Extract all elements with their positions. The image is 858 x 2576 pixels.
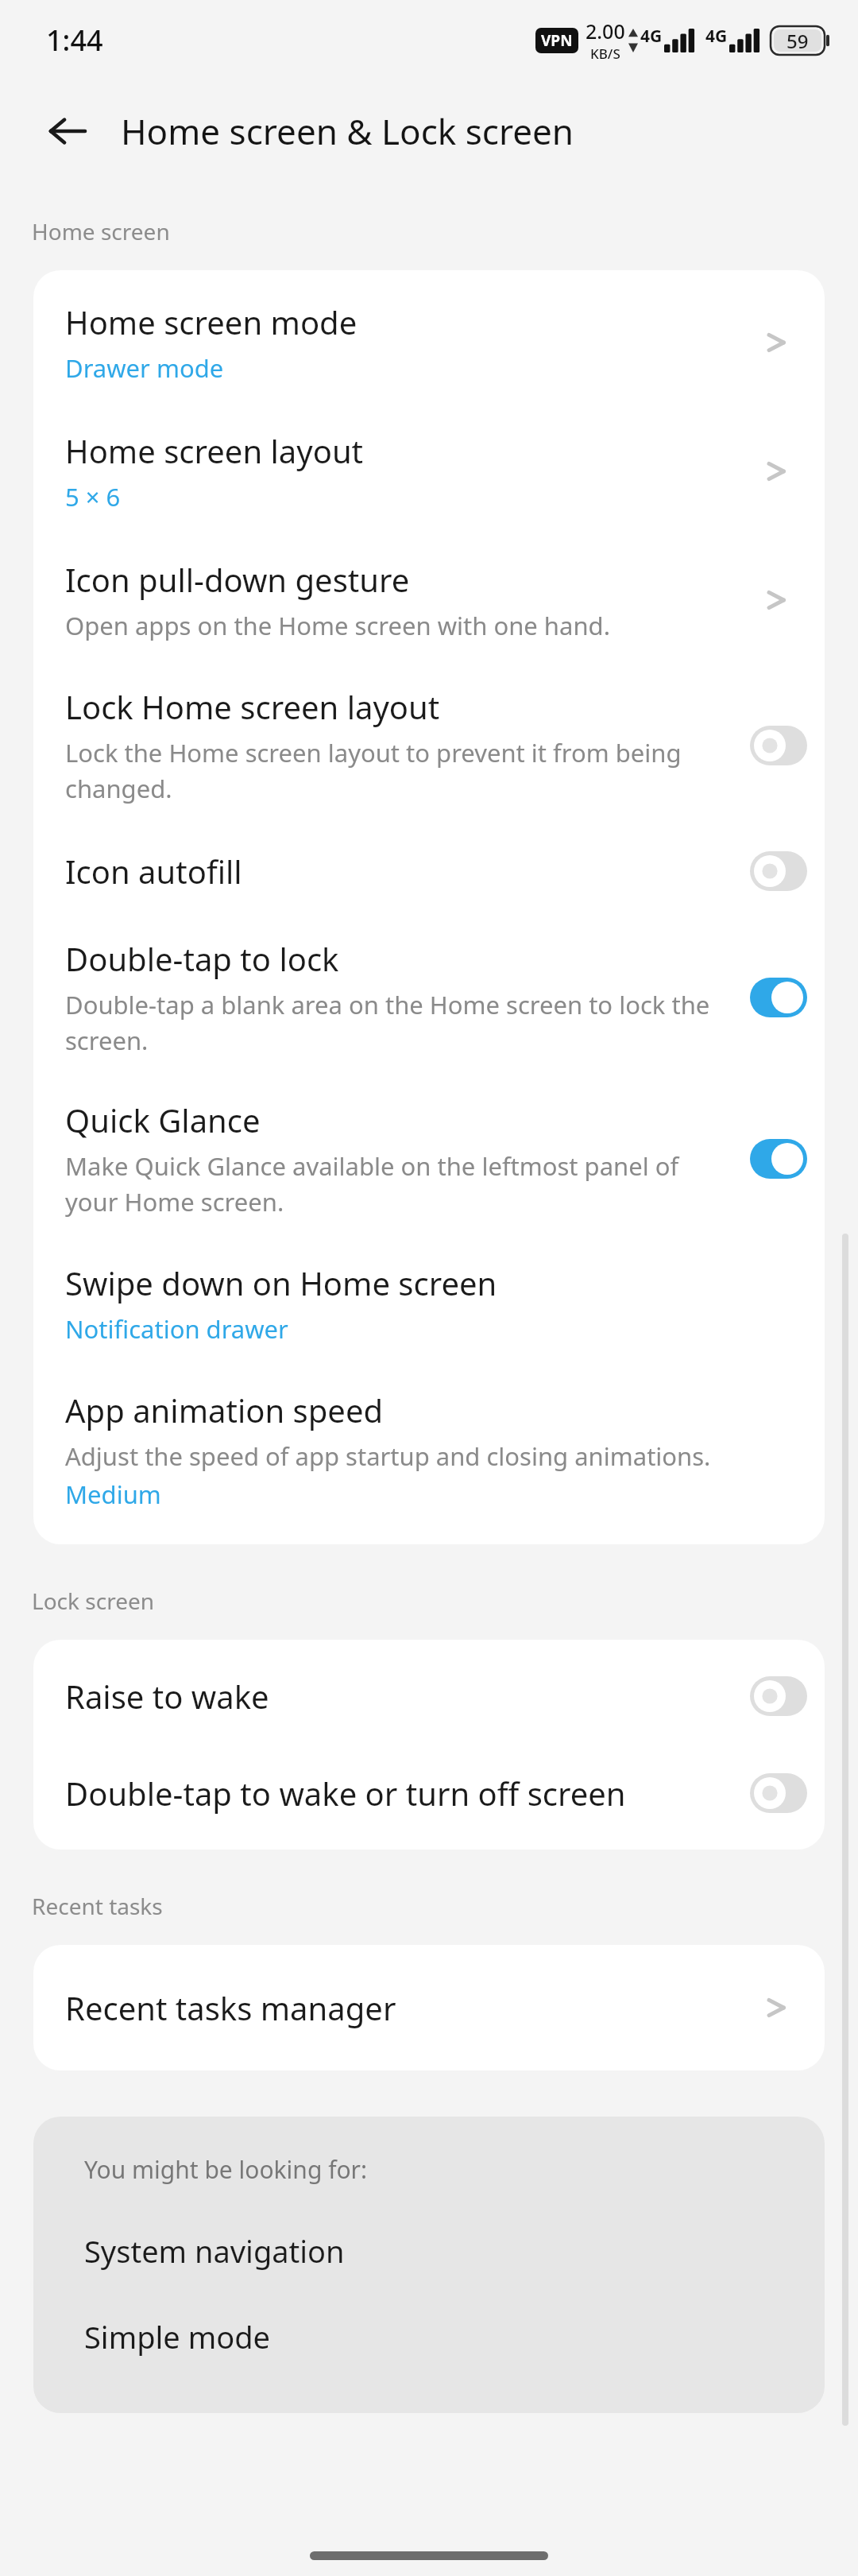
staticText: Home screen layout xyxy=(65,429,364,472)
staticText: Drawer mode xyxy=(65,351,224,385)
staticText: System navigation xyxy=(84,2230,345,2272)
button[interactable]: Lock Home screen layout xyxy=(750,726,807,765)
button[interactable]: Double-tap to wake or turn off screen xyxy=(750,1773,807,1813)
staticText: Medium xyxy=(65,1478,161,1511)
staticText: Icon pull-down gesture xyxy=(65,558,410,601)
staticText: 59 xyxy=(786,28,809,54)
staticText: Raise to wake xyxy=(65,1675,269,1718)
staticText: Recent tasks manager xyxy=(65,1986,396,2029)
button[interactable]: Recent tasks manager xyxy=(33,1945,825,2070)
button[interactable]: Raise to wake xyxy=(33,1648,825,1745)
button[interactable]: Double-tap to lock xyxy=(750,978,807,1017)
button[interactable]: Quick Glance xyxy=(750,1139,807,1179)
staticText: Double-tap a blank area on the Home scre… xyxy=(65,988,735,1057)
staticText: App animation speed xyxy=(65,1389,384,1431)
staticText: Notification drawer xyxy=(65,1312,288,1346)
staticText: Recent tasks xyxy=(32,1891,163,1921)
button[interactable]: Lock Home screen layout xyxy=(33,664,825,826)
staticText: You might be looking for: xyxy=(84,2153,368,2186)
button[interactable]: Back xyxy=(40,103,95,159)
button[interactable]: Double-tap to lock xyxy=(33,916,825,1078)
staticText: Lock Home screen layout xyxy=(65,685,440,728)
button[interactable]: Swipe down on Home screen xyxy=(33,1239,825,1368)
button[interactable]: Home screen mode xyxy=(33,277,825,407)
staticText: Quick Glance xyxy=(65,1098,261,1141)
staticText: Home screen mode xyxy=(65,300,357,343)
button[interactable]: Icon autofill xyxy=(33,826,825,916)
staticText: Make Quick Glance available on the leftm… xyxy=(65,1149,694,1218)
staticText: Home screen & Lock screen xyxy=(121,107,574,155)
button[interactable]: Icon pull-down gesture xyxy=(33,536,825,664)
staticText: 5 × 6 xyxy=(65,480,121,513)
staticText: 1:44 xyxy=(46,21,103,60)
staticText: Lock the Home screen layout to prevent i… xyxy=(65,736,715,805)
staticText: KB/S xyxy=(590,45,620,63)
button[interactable]: Double-tap to wake or turn off screen xyxy=(33,1745,825,1842)
button[interactable]: App animation speed xyxy=(33,1368,825,1478)
staticText: Lock screen xyxy=(32,1586,155,1616)
staticText: Swipe down on Home screen xyxy=(65,1261,497,1304)
button[interactable]: Home screen layout xyxy=(33,407,825,536)
staticText: 4G xyxy=(705,25,728,48)
staticText: Icon autofill xyxy=(65,850,242,893)
button[interactable]: Icon autofill xyxy=(750,851,807,891)
staticText: Simple mode xyxy=(84,2316,271,2357)
button[interactable]: System navigation xyxy=(33,2218,825,2284)
staticText: Open apps on the Home screen with one ha… xyxy=(65,609,610,642)
staticText: Double-tap to lock xyxy=(65,937,339,980)
button[interactable]: Quick Glance xyxy=(33,1078,825,1239)
button[interactable]: Raise to wake xyxy=(750,1676,807,1716)
staticText: Home screen xyxy=(32,216,170,246)
staticText: Adjust the speed of app startup and clos… xyxy=(65,1439,711,1473)
staticText: Double-tap to wake or turn off screen xyxy=(65,1772,626,1815)
staticText: 2.00 xyxy=(586,17,625,45)
staticText: VPN xyxy=(541,30,573,51)
staticText: 4G xyxy=(640,25,663,48)
button[interactable]: Simple mode xyxy=(33,2303,825,2370)
